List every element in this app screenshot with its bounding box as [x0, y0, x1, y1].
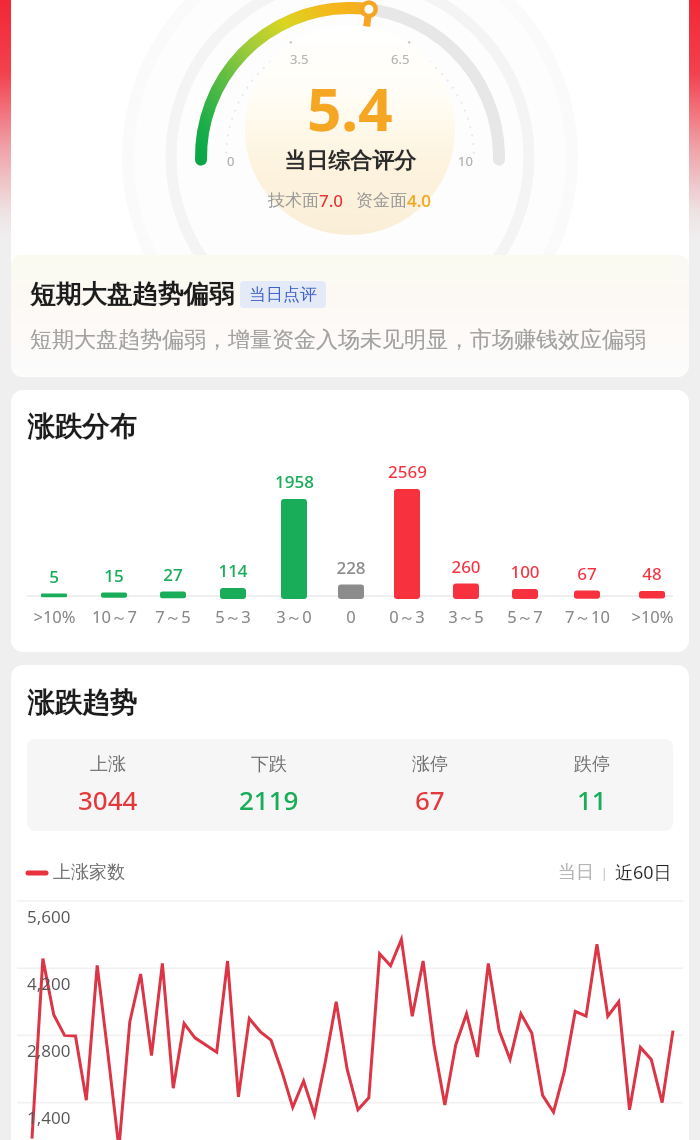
staticText: 0: [227, 152, 235, 170]
staticText: 67: [577, 562, 597, 585]
staticText: 下跌: [251, 753, 287, 776]
button[interactable]: 短期大盘趋势偏弱: [11, 255, 689, 377]
button[interactable]: 3～0: [254, 605, 334, 628]
staticText: 7～10: [565, 605, 610, 628]
button[interactable]: 涨停: [349, 753, 511, 817]
button[interactable]: 5～3: [193, 605, 273, 628]
staticText: 近60日: [615, 860, 672, 885]
staticText: 228: [336, 556, 366, 579]
staticText: 0: [346, 605, 356, 627]
staticText: 3.5: [290, 50, 309, 68]
button[interactable]: 近60日: [615, 860, 672, 885]
staticText: >10%: [631, 605, 674, 627]
button[interactable]: 3～5: [426, 605, 506, 628]
staticText: 涨停: [412, 753, 448, 776]
staticText: 5～7: [507, 605, 543, 628]
staticText: 当日综合评分: [284, 147, 416, 175]
staticText: 当日: [558, 861, 594, 884]
button[interactable]: 0: [311, 605, 391, 627]
staticText: 7.0: [319, 189, 344, 212]
staticText: 100: [510, 560, 540, 583]
staticText: 技术面: [268, 190, 319, 211]
staticText: 当日点评: [249, 284, 317, 305]
button[interactable]: 当日: [558, 861, 594, 884]
staticText: 11: [577, 782, 607, 817]
button[interactable]: 上涨: [27, 753, 188, 817]
staticText: 67: [415, 782, 445, 817]
staticText: 27: [163, 563, 183, 586]
staticText: 涨跌趋势: [27, 686, 137, 721]
button[interactable]: 7～5: [133, 605, 213, 628]
staticText: 260: [451, 555, 481, 578]
staticText: 48: [642, 562, 662, 585]
staticText: 4,200: [27, 972, 71, 995]
button[interactable]: 0～3: [367, 605, 447, 628]
staticText: 5～3: [215, 605, 251, 628]
staticText: 1,400: [27, 1106, 71, 1129]
staticText: >10%: [33, 605, 76, 627]
staticText: 短期大盘趋势偏弱，增量资金入场未见明显，市场赚钱效应偏弱: [30, 326, 646, 354]
staticText: 资金面: [356, 190, 407, 211]
staticText: 跌停: [574, 753, 610, 776]
button[interactable]: >10%: [14, 605, 94, 627]
button[interactable]: >10%: [612, 605, 689, 627]
staticText: 涨跌分布: [27, 410, 137, 445]
staticText: 5.4: [307, 67, 393, 149]
staticText: 7～5: [155, 605, 191, 628]
button[interactable]: 跌停: [511, 753, 673, 817]
staticText: 2119: [239, 782, 299, 817]
button[interactable]: 5～7: [485, 605, 565, 628]
staticText: 3044: [78, 782, 138, 817]
staticText: 4.0: [407, 189, 432, 212]
staticText: 5,600: [27, 905, 71, 928]
staticText: 2569: [388, 460, 427, 483]
staticText: 10: [458, 152, 473, 170]
staticText: 15: [104, 564, 124, 587]
staticText: 1958: [275, 470, 314, 493]
staticText: 2,800: [27, 1039, 71, 1062]
button[interactable]: 7～10: [547, 605, 627, 628]
staticText: 0～3: [389, 605, 425, 628]
button[interactable]: 10～7: [74, 605, 154, 628]
staticText: 上涨家数: [53, 861, 125, 884]
staticText: |: [594, 864, 615, 882]
staticText: 6.5: [391, 50, 410, 68]
staticText: 短期大盘趋势偏弱: [30, 278, 234, 310]
staticText: 10～7: [92, 605, 137, 628]
staticText: 上涨: [90, 753, 126, 776]
staticText: 3～5: [448, 605, 484, 628]
staticText: 5: [49, 565, 59, 588]
staticText: 3～0: [276, 605, 312, 628]
staticText: 114: [218, 559, 248, 582]
button[interactable]: 下跌: [188, 753, 349, 817]
